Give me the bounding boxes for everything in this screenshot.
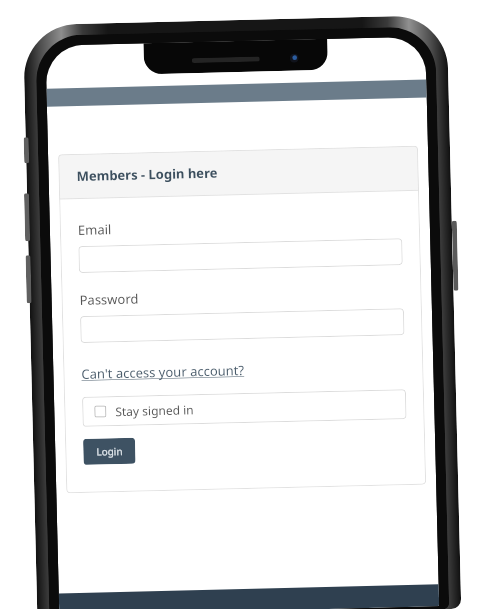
staticText: Stay signed in <box>115 401 194 419</box>
button[interactable]: Text input field <box>80 308 405 343</box>
staticText: Email <box>78 220 112 239</box>
staticText: Members - Login here <box>76 164 218 185</box>
staticText: Login <box>96 444 123 459</box>
button[interactable]: Login <box>83 438 136 465</box>
button[interactable]: Text input field <box>78 238 403 273</box>
staticText: Password <box>79 289 139 309</box>
staticText: Can't access your account? <box>81 361 245 383</box>
button[interactable]: Can't access your account? <box>81 361 245 383</box>
button[interactable]: Stay signed in <box>82 389 407 427</box>
